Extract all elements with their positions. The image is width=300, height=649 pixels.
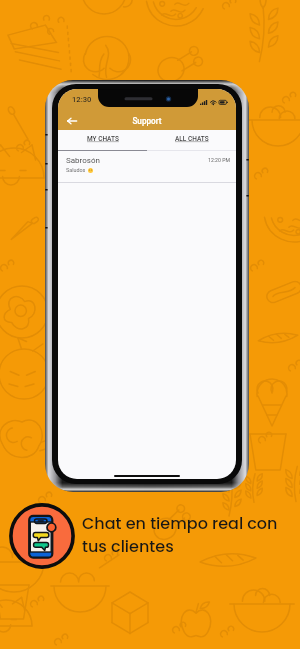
button[interactable]: Sabrosón <box>58 151 236 182</box>
staticText: Sabrosón <box>66 156 208 165</box>
button[interactable]: MY CHATS <box>58 130 147 151</box>
staticText: Support <box>58 116 236 126</box>
staticText: MY CHATS <box>87 135 119 143</box>
staticText: ALL CHATS <box>175 135 209 143</box>
button[interactable]: Back <box>61 110 82 131</box>
staticText: 12:30 <box>72 95 92 104</box>
staticText: Saludos <box>66 167 86 173</box>
staticText: Chat en tiempo real con tus clientes <box>82 512 278 557</box>
button[interactable]: ALL CHATS <box>147 130 236 151</box>
staticText: 12:20 PM <box>208 157 231 163</box>
